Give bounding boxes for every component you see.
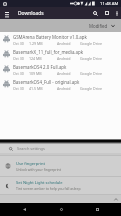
staticText: Oct 30 (13, 41, 24, 46)
staticText: Google Drive (80, 56, 102, 61)
staticText: Tint screen amber to help you fall aslee… (16, 186, 81, 191)
button[interactable]: Search (90, 7, 101, 19)
button[interactable]: GSMArena Battery Monitor v1.0.apk (0, 32, 121, 47)
staticText: Search settings (17, 146, 45, 151)
button[interactable]: Navigation menu (0, 7, 14, 19)
staticText: BasemarkOS4 2.0 Full.apk (13, 64, 67, 70)
staticText: Unlock with your fingerprint (16, 167, 61, 172)
staticText: Google Drive (80, 71, 102, 76)
button[interactable]: More options (112, 7, 121, 19)
staticText: Use fingerprint (16, 161, 46, 166)
button[interactable]: Search settings (0, 144, 121, 153)
staticText: Downloads (18, 10, 44, 17)
button[interactable]: Back (14, 203, 34, 216)
staticText: Android applic… (57, 56, 80, 61)
staticText: Android applic… (57, 41, 80, 46)
staticText: 41.5 MB (29, 86, 43, 91)
staticText: Oct 30 (13, 56, 24, 61)
staticText: Google Drive (80, 41, 102, 46)
staticText: Android applic… (57, 86, 80, 91)
button[interactable]: BasemarkOS4_Full - original.apk (0, 77, 121, 92)
staticText: Modified (89, 23, 108, 29)
button[interactable]: Home (51, 203, 71, 216)
staticText: 1.29 MB (29, 41, 43, 46)
staticText: Android applic… (57, 71, 80, 76)
button[interactable]: BasemarkX_11_full_for_media.apk (0, 47, 121, 62)
staticText: BasemarkX_11_full_for_media.apk (13, 49, 84, 55)
button[interactable]: BasemarkOS4 2.0 Full.apk (0, 62, 121, 77)
staticText: BasemarkOS4_Full - original.apk (13, 79, 80, 85)
button[interactable]: Set Night Light schedule (0, 177, 121, 194)
staticText: Set Night Light schedule (16, 180, 63, 185)
staticText: Oct 30 (13, 71, 24, 76)
staticText: 11:48 AM (100, 1, 119, 7)
staticText: GSMArena Battery Monitor v1.0.apk (13, 34, 87, 40)
staticText: Oct 30 (13, 86, 24, 91)
button[interactable]: Modified (85, 21, 119, 31)
button[interactable]: Recent apps (87, 203, 107, 216)
staticText: 109 MB (29, 71, 42, 76)
staticText: 124 MB (29, 56, 42, 61)
button[interactable]: Grid view (101, 7, 112, 19)
staticText: Google Drive (80, 86, 102, 91)
button[interactable]: Use fingerprint (0, 156, 121, 176)
